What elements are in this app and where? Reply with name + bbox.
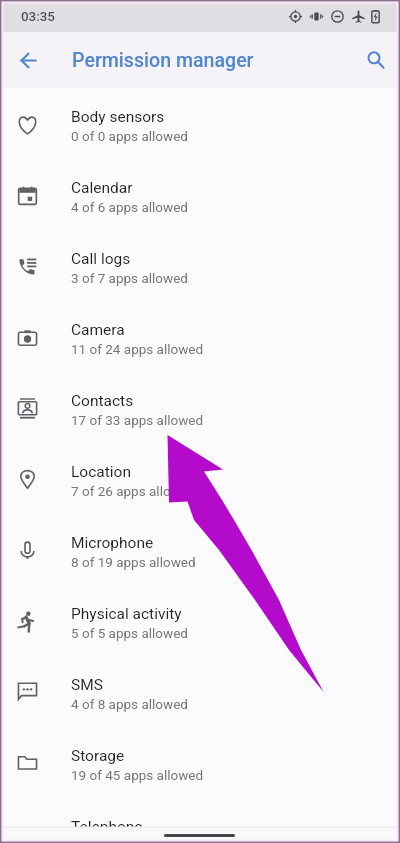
staticText: 4 of 8 apps allowed — [71, 696, 188, 712]
staticText: 4 of 6 apps allowed — [71, 199, 188, 215]
staticText: Camera — [71, 321, 125, 339]
staticText: 5 of 5 apps allowed — [71, 625, 188, 641]
button[interactable]: Calendar — [0, 161, 400, 232]
staticText: Physical activity — [71, 605, 182, 623]
button[interactable]: Call logs — [0, 232, 400, 303]
staticText: 0 of 0 apps allowed — [71, 128, 188, 144]
staticText: 2 of 9 apps allowed — [71, 838, 188, 843]
staticText: 17 of 33 apps allowed — [71, 412, 204, 428]
button[interactable]: Microphone — [0, 516, 400, 587]
button[interactable]: Physical activity — [0, 587, 400, 658]
button[interactable]: Camera — [0, 303, 400, 374]
staticText: Permission manager — [72, 49, 254, 72]
staticText: Calendar — [71, 179, 133, 197]
button[interactable]: Search — [356, 40, 396, 80]
staticText: Contacts — [71, 392, 134, 410]
button[interactable]: Back — [8, 40, 49, 81]
staticText: Body sensors — [71, 108, 165, 126]
staticText: 3 of 7 apps allowed — [71, 270, 188, 286]
staticText: 11 of 24 apps allowed — [71, 341, 204, 357]
button[interactable]: Storage — [0, 729, 400, 800]
button[interactable]: SMS — [0, 658, 400, 729]
staticText: Microphone — [71, 534, 154, 552]
button[interactable]: Location — [0, 445, 400, 516]
staticText: 7 of 26 apps allowed — [71, 483, 196, 499]
staticText: Storage — [71, 747, 125, 765]
staticText: Telephone — [71, 818, 143, 836]
staticText: 19 of 45 apps allowed — [71, 767, 204, 783]
button[interactable]: Contacts — [0, 374, 400, 445]
staticText: 03:35 — [21, 9, 55, 25]
staticText: Call logs — [71, 250, 131, 268]
button[interactable]: Body sensors — [0, 90, 400, 161]
button[interactable]: Telephone — [0, 800, 400, 843]
staticText: SMS — [71, 676, 103, 694]
staticText: Location — [71, 463, 131, 481]
staticText: 8 of 19 apps allowed — [71, 554, 196, 570]
